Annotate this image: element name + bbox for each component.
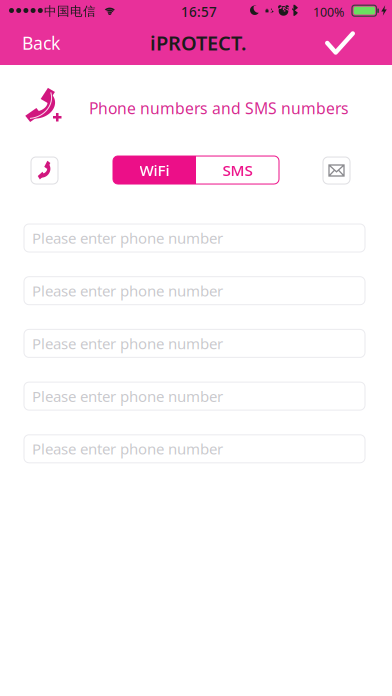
button[interactable]: Please enter phone number	[24, 277, 365, 305]
staticText: Please enter phone number	[32, 333, 223, 354]
button[interactable]: Please enter phone number	[24, 435, 365, 463]
button[interactable]: SMS	[196, 156, 279, 184]
staticText: SMS	[222, 160, 252, 180]
staticText: 中国电信	[44, 3, 96, 19]
staticText: iPROTECT.	[150, 29, 247, 56]
staticText: Please enter phone number	[32, 280, 223, 301]
staticText: Please enter phone number	[32, 386, 223, 406]
button[interactable]: Please enter phone number	[24, 224, 365, 252]
button[interactable]: Phone numbers	[31, 157, 58, 184]
staticText: Back	[22, 31, 60, 55]
button[interactable]: Please enter phone number	[24, 329, 365, 357]
button[interactable]: WiFi	[113, 156, 196, 184]
staticText: 100%	[313, 3, 344, 20]
staticText: 16:57	[181, 2, 217, 21]
staticText: WiFi	[139, 160, 169, 180]
button[interactable]: SMS numbers	[323, 157, 350, 184]
staticText: Please enter phone number	[32, 439, 223, 459]
button[interactable]: Back	[0, 21, 76, 65]
staticText: Please enter phone number	[32, 228, 223, 248]
staticText: Phone numbers and SMS numbers	[89, 97, 349, 119]
button[interactable]: Confirm	[0, 21, 62, 65]
button[interactable]: Please enter phone number	[24, 382, 365, 410]
